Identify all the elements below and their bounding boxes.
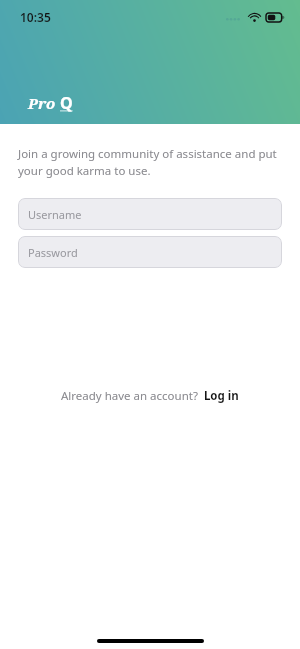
button[interactable]: Password: [18, 236, 282, 268]
staticText: Q: [60, 92, 73, 114]
staticText: Pro: [28, 93, 56, 113]
staticText: Already have an account? Log in: [61, 388, 239, 404]
staticText: Username: [28, 207, 82, 222]
staticText: Join a growing community of assistance a…: [18, 146, 282, 178]
button[interactable]: Username: [18, 198, 282, 230]
staticText: 10:35: [20, 9, 51, 25]
button[interactable]: Already have an account? Log in: [53, 384, 247, 408]
staticText: Password: [28, 245, 78, 260]
